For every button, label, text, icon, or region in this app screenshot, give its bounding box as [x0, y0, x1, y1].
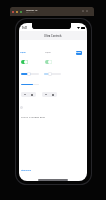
- button[interactable]: Decrease: [21, 92, 28, 97]
- button[interactable]: Toggle: [21, 60, 28, 64]
- staticText: Label: [45, 51, 51, 54]
- staticText: iOS 17.0: [26, 11, 35, 14]
- staticText: Label: [20, 51, 26, 54]
- staticText: iPhone 15: [26, 8, 38, 11]
- button[interactable]: Push: [26, 169, 31, 172]
- button[interactable]: Slider: [21, 72, 39, 76]
- button[interactable]: Button: [76, 51, 82, 55]
- button[interactable]: Decrease: [42, 92, 49, 97]
- staticText: Ultra Controls: [44, 34, 62, 38]
- staticText: Button: [76, 51, 82, 55]
- button[interactable]: Slider: [44, 72, 61, 76]
- staticText: 9:41: [22, 26, 27, 29]
- button[interactable]: Toggle: [45, 60, 52, 64]
- button[interactable]: Increase: [49, 92, 57, 97]
- button[interactable]: Item: [21, 169, 26, 172]
- button[interactable]: Increase: [28, 92, 36, 97]
- staticText: This is a unified field: [21, 115, 45, 118]
